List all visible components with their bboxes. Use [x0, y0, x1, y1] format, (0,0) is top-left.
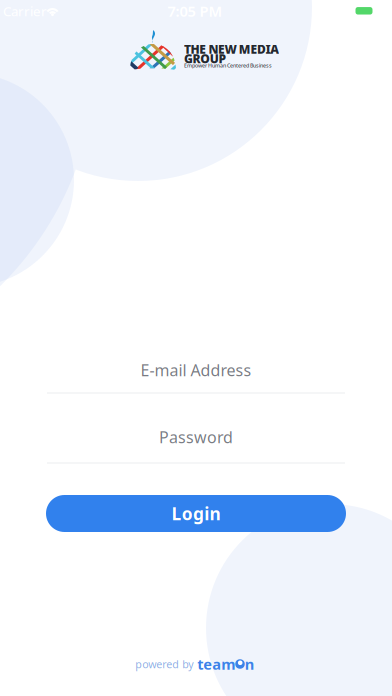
staticText: Password — [159, 426, 233, 448]
staticText: n — [245, 654, 255, 674]
staticText: 7:05 PM — [167, 1, 222, 21]
staticText: Login — [171, 502, 221, 525]
staticText: Empower Human Centered Business — [184, 62, 272, 69]
button[interactable]: powered by teamon — [135, 654, 255, 674]
staticText: THE NEW MEDIA — [184, 41, 279, 57]
staticText: powered by — [135, 657, 193, 671]
button[interactable]: Password — [47, 420, 345, 466]
staticText: E-mail Address — [140, 359, 251, 381]
staticText: GROUP — [184, 50, 226, 66]
staticText: Carrier — [3, 2, 47, 20]
staticText: team — [197, 654, 235, 674]
button[interactable]: Login — [46, 495, 346, 532]
button[interactable]: E-mail Address — [47, 353, 345, 399]
